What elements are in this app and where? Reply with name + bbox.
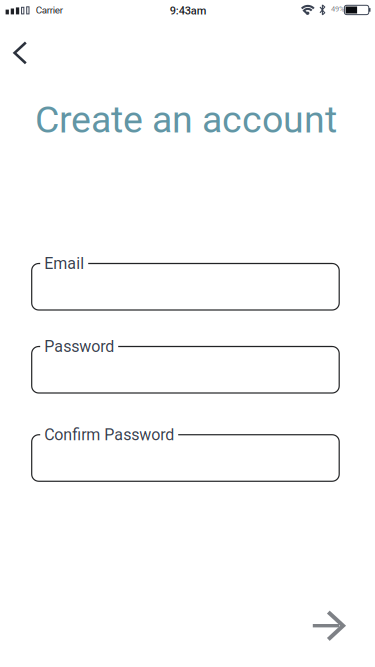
staticText: Password <box>44 337 114 356</box>
button[interactable] <box>300 598 356 654</box>
staticText: Confirm Password <box>44 425 174 444</box>
staticText: 49% <box>331 5 344 13</box>
staticText: Email <box>44 254 84 273</box>
staticText: Create an account <box>35 98 337 141</box>
staticText: 9:43am <box>170 4 207 17</box>
staticText: Carrier <box>36 4 63 16</box>
button[interactable]: Password <box>32 346 339 393</box>
button[interactable]: Email <box>32 263 339 310</box>
button[interactable]: Confirm Password <box>32 435 339 481</box>
button[interactable] <box>0 31 44 75</box>
